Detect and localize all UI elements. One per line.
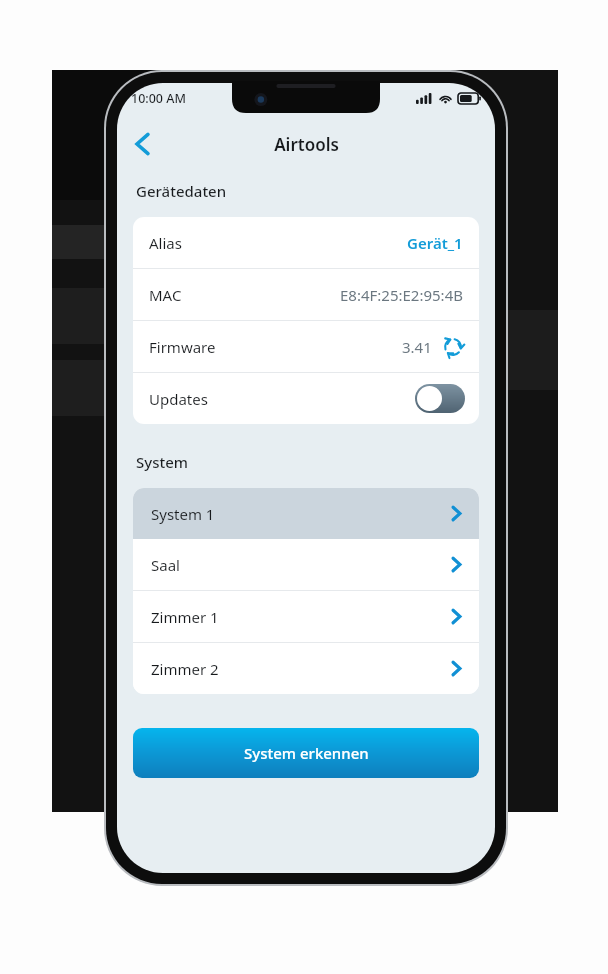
button[interactable]: Alias (133, 217, 479, 268)
staticText: Saal (151, 555, 180, 575)
staticText: System erkennen (244, 743, 369, 763)
button[interactable]: System 1 (133, 488, 479, 539)
staticText: Airtools (274, 133, 339, 156)
staticText: Updates (149, 389, 208, 409)
button[interactable]: Updates (133, 373, 479, 424)
staticText: Gerätedaten (136, 181, 227, 201)
button[interactable]: Back (125, 127, 159, 161)
staticText: Zimmer 1 (151, 607, 219, 627)
button[interactable]: Firmware (133, 321, 479, 372)
button[interactable]: Zimmer 2 (133, 643, 479, 694)
staticText: Alias (149, 233, 182, 253)
button[interactable]: Updates toggle, off (415, 384, 465, 413)
staticText: MAC (149, 285, 182, 305)
button[interactable]: System erkennen (133, 728, 479, 778)
staticText: Zimmer 2 (151, 659, 219, 679)
staticText: System 1 (151, 504, 215, 524)
staticText: E8:4F:25:E2:95:4B (340, 285, 463, 305)
button[interactable]: MAC (133, 269, 479, 320)
button[interactable]: Saal (133, 539, 479, 590)
button[interactable]: Zimmer 1 (133, 591, 479, 642)
staticText: 10:00 AM (131, 90, 186, 107)
staticText: 3.41 (402, 337, 432, 357)
button[interactable]: Refresh firmware (441, 335, 465, 359)
staticText: Gerät_1 (407, 233, 463, 253)
staticText: Firmware (149, 337, 216, 357)
staticText: System (136, 452, 189, 472)
